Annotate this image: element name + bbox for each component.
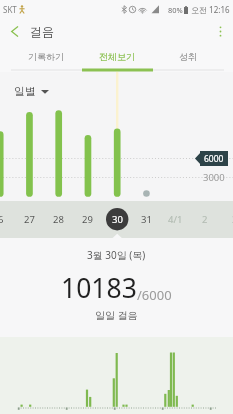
staticText: 걸음 bbox=[30, 24, 54, 39]
staticText: 3000 bbox=[203, 171, 225, 184]
staticText: 일일 걸음 bbox=[95, 308, 138, 322]
staticText: 80% bbox=[168, 5, 183, 15]
staticText: SKT bbox=[3, 4, 17, 15]
button[interactable]: More options bbox=[207, 18, 233, 44]
staticText: 4/1 bbox=[168, 213, 183, 226]
button[interactable]: 성취 bbox=[152, 44, 223, 68]
staticText: 2 bbox=[202, 213, 208, 226]
staticText: 30 bbox=[112, 213, 123, 226]
staticText: 6000 bbox=[204, 153, 224, 165]
staticText: 28 bbox=[53, 213, 64, 226]
button[interactable]: 29 bbox=[73, 201, 102, 238]
staticText: /6000 bbox=[137, 286, 172, 304]
staticText: 3 bbox=[232, 213, 233, 226]
button[interactable]: 4/1 bbox=[161, 201, 190, 238]
staticText: 27 bbox=[24, 213, 35, 226]
staticText: 6 bbox=[0, 213, 4, 226]
button[interactable]: 기록하기 bbox=[10, 44, 81, 68]
button[interactable]: 2 bbox=[190, 201, 219, 238]
staticText: 3월 30일 (목) bbox=[87, 248, 146, 262]
staticText: 31 bbox=[141, 213, 152, 226]
button[interactable]: 28 bbox=[44, 201, 73, 238]
button[interactable]: 31 bbox=[132, 201, 161, 238]
staticText: 10183 bbox=[61, 270, 137, 306]
staticText: 전체보기 bbox=[99, 51, 135, 62]
button[interactable]: 6 bbox=[0, 201, 15, 238]
button[interactable]: 27 bbox=[15, 201, 44, 238]
staticText: 기록하기 bbox=[28, 51, 64, 62]
staticText: 오전 12:16 bbox=[191, 4, 230, 15]
staticText: 29 bbox=[82, 213, 93, 226]
staticText: 일별 bbox=[14, 84, 36, 98]
button[interactable]: Back bbox=[0, 18, 28, 44]
staticText: 성취 bbox=[179, 51, 197, 62]
button[interactable]: 전체보기 bbox=[81, 44, 152, 68]
button[interactable]: 30 bbox=[103, 201, 132, 238]
